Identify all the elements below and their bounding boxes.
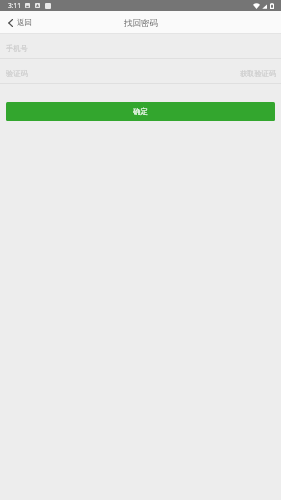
staticText: 获取验证码 [240,69,276,78]
staticText: 返回 [17,18,32,27]
button[interactable]: 返回 [0,14,40,31]
button[interactable]: 获取验证码 [235,59,281,83]
staticText: 确定 [133,107,148,116]
button[interactable]: 确定 [6,102,275,121]
staticText: 手机号 [6,44,28,53]
staticText: 验证码 [6,69,28,78]
staticText: 3:11 [8,1,21,10]
staticText: 找回密码 [124,18,158,29]
